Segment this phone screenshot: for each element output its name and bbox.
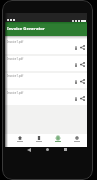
- button[interactable]: Invoice1.pdf: [5, 90, 87, 105]
- button[interactable]: [48, 134, 67, 147]
- button[interactable]: [46, 148, 49, 151]
- button[interactable]: [80, 62, 85, 67]
- button[interactable]: [80, 79, 85, 84]
- button[interactable]: Invoice1.pdf: [5, 73, 87, 88]
- button[interactable]: [75, 97, 77, 101]
- button[interactable]: [67, 134, 86, 147]
- staticText: Invoice Generator: [7, 26, 45, 32]
- button[interactable]: [27, 148, 31, 152]
- button[interactable]: [75, 63, 77, 67]
- button[interactable]: [10, 134, 29, 147]
- staticText: Invoice1.pdf: [7, 74, 24, 78]
- staticText: Invoice1.pdf: [7, 40, 24, 44]
- button[interactable]: Invoice1.pdf: [5, 39, 87, 54]
- staticText: Invoice1.pdf: [7, 57, 24, 61]
- button[interactable]: [75, 46, 77, 50]
- button[interactable]: [75, 80, 77, 84]
- button[interactable]: Invoice1.pdf: [5, 56, 87, 71]
- button[interactable]: [29, 134, 48, 147]
- button[interactable]: [80, 45, 85, 50]
- staticText: Invoice1.pdf: [7, 91, 24, 95]
- button[interactable]: [80, 96, 85, 101]
